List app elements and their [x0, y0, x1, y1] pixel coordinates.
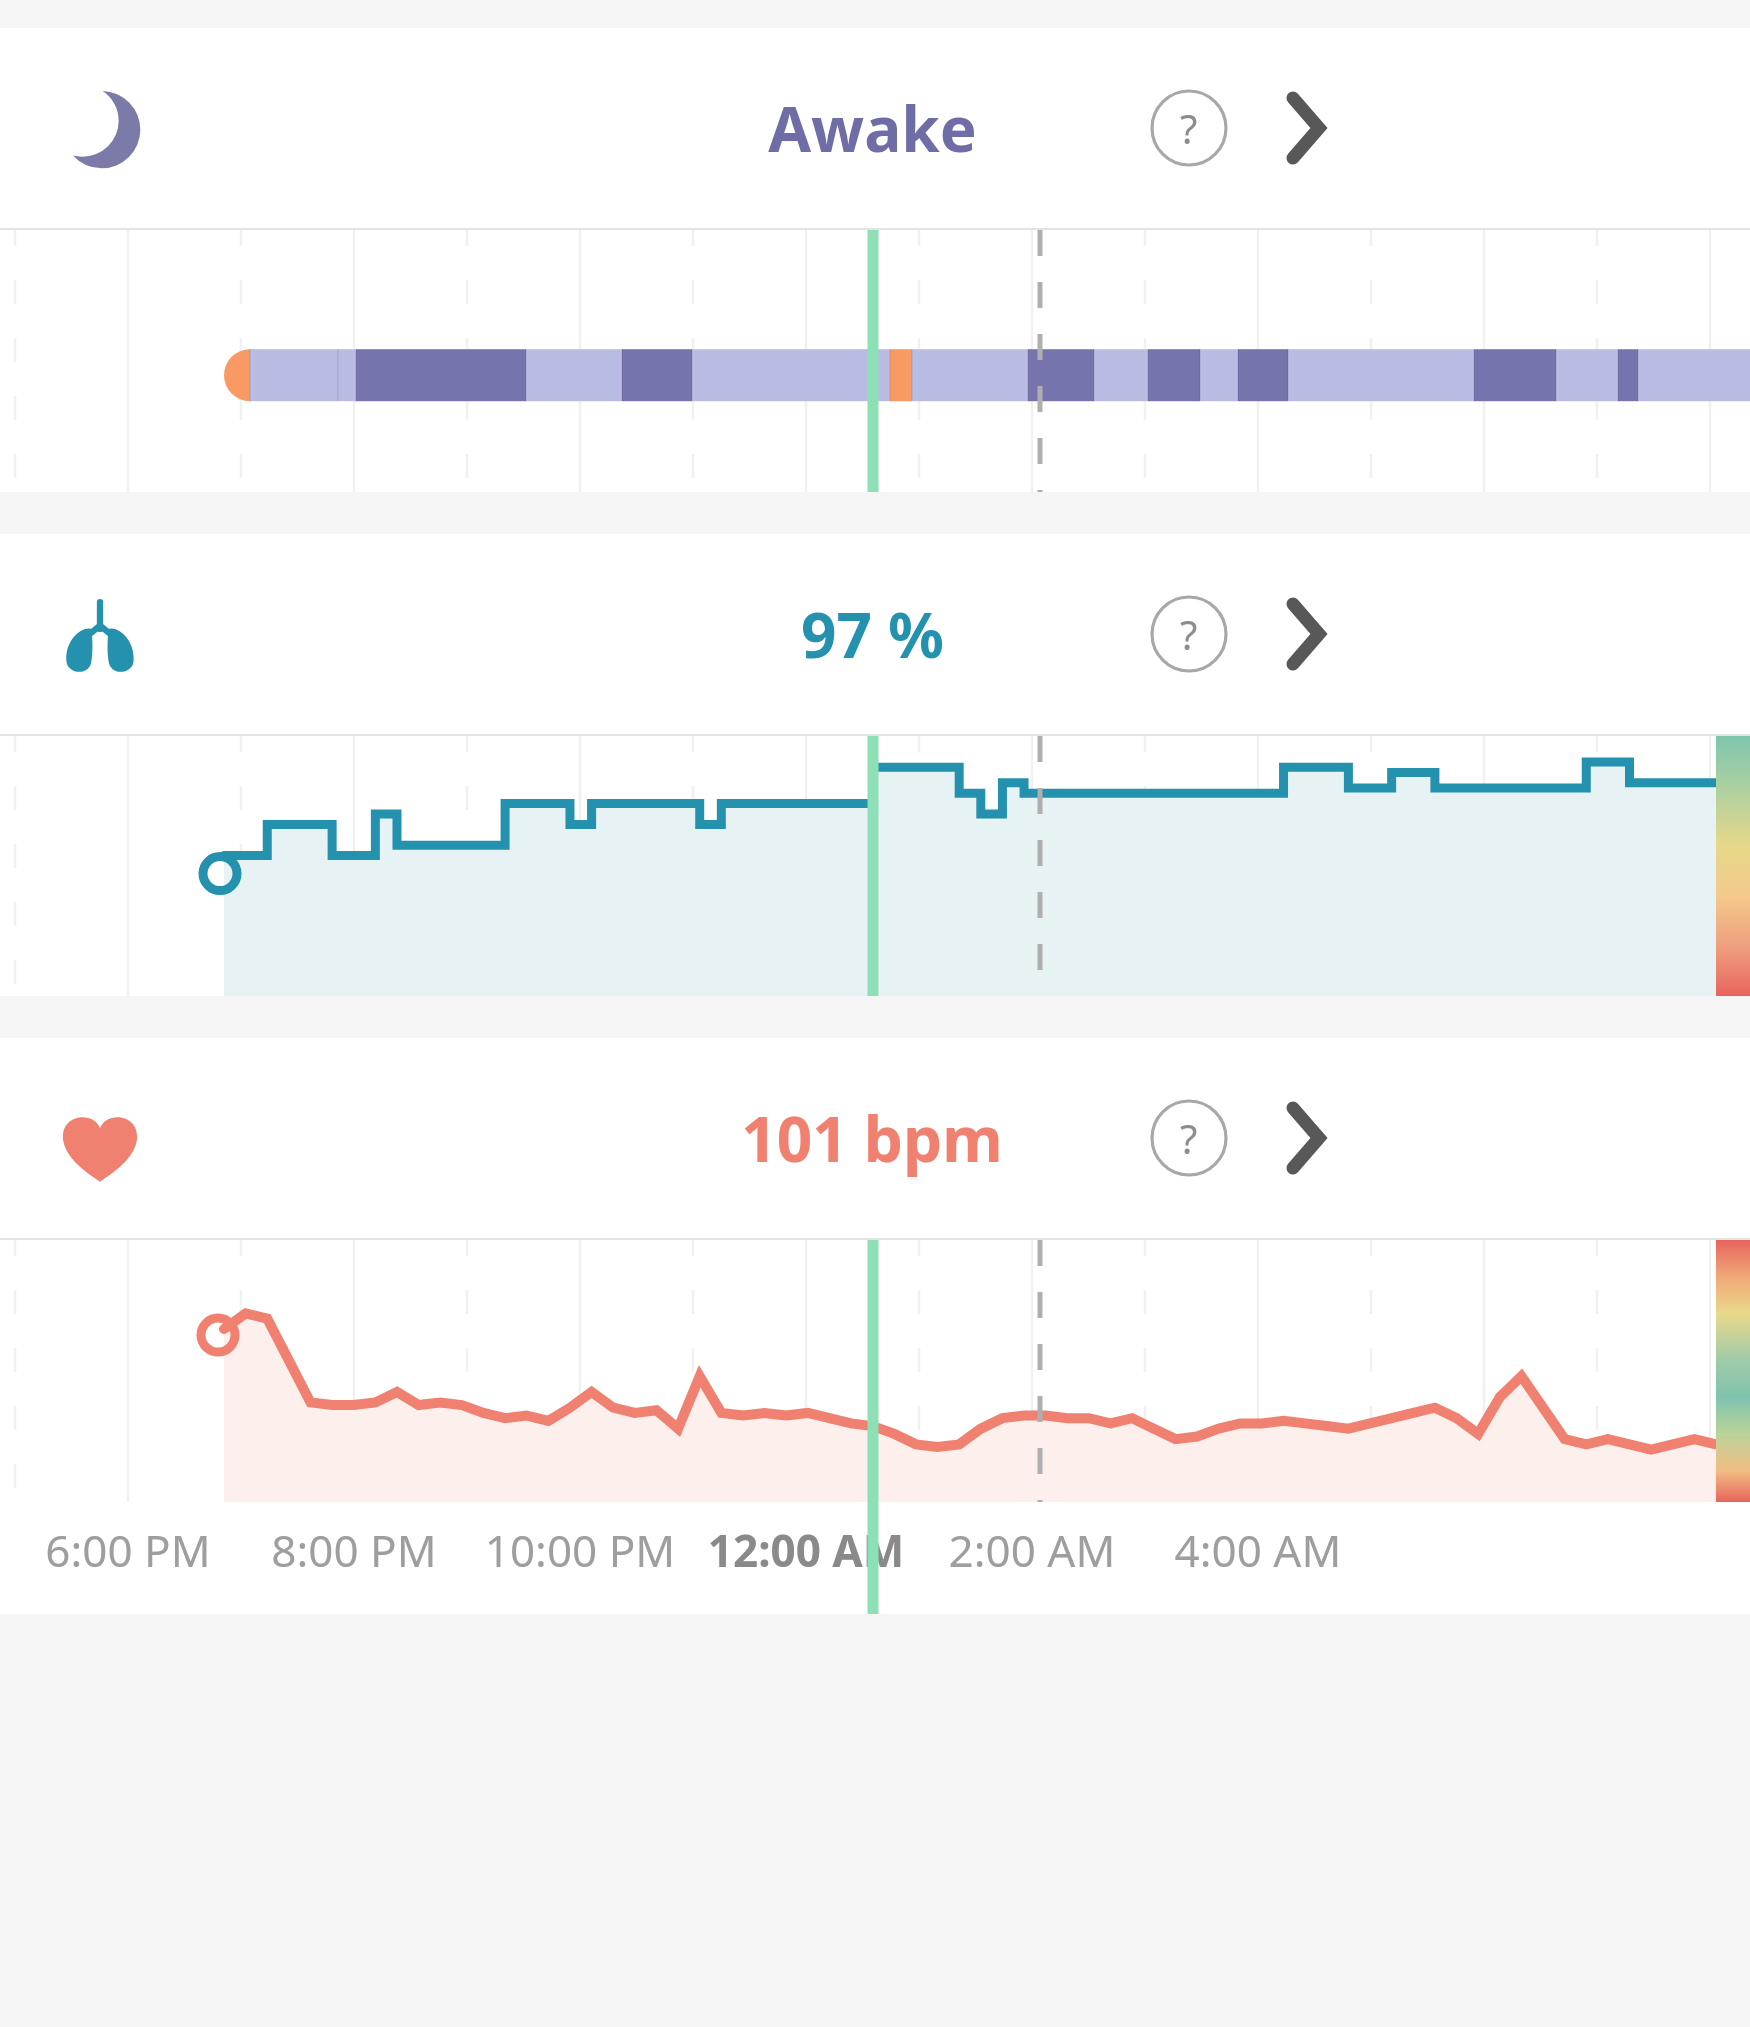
button[interactable]: Sleep: [58, 86, 142, 170]
button[interactable]: Help: [1150, 1099, 1228, 1177]
staticText: 4:00 AM: [1108, 1520, 1408, 1580]
button[interactable]: Help: [1150, 89, 1228, 167]
staticText: 6:00 PM: [0, 1520, 278, 1580]
staticText: 2:00 AM: [882, 1520, 1182, 1580]
staticText: Awake: [768, 86, 977, 170]
button[interactable]: Open details: [1272, 594, 1352, 674]
staticText: ?: [1180, 101, 1198, 155]
staticText: 10:00 PM: [430, 1520, 730, 1580]
button[interactable]: Sleep: [0, 28, 1750, 228]
staticText: ?: [1180, 1111, 1198, 1165]
button[interactable]: Open details: [1272, 1098, 1352, 1178]
button[interactable]: Heart rate: [0, 1038, 1750, 1238]
staticText: ?: [1180, 607, 1198, 661]
staticText: 12:00 AM: [656, 1520, 956, 1580]
staticText: 101 bpm: [741, 1096, 1003, 1180]
button[interactable]: Open details: [1272, 88, 1352, 168]
button[interactable]: [0, 736, 1750, 996]
button[interactable]: Heart rate: [58, 1096, 142, 1180]
button[interactable]: [0, 1240, 1750, 1502]
button[interactable]: [0, 230, 1750, 492]
button[interactable]: Blood oxygen: [58, 592, 142, 676]
button[interactable]: Blood oxygen: [0, 534, 1750, 734]
staticText: 8:00 PM: [204, 1520, 504, 1580]
button[interactable]: Help: [1150, 595, 1228, 673]
staticText: 97 %: [801, 592, 944, 676]
